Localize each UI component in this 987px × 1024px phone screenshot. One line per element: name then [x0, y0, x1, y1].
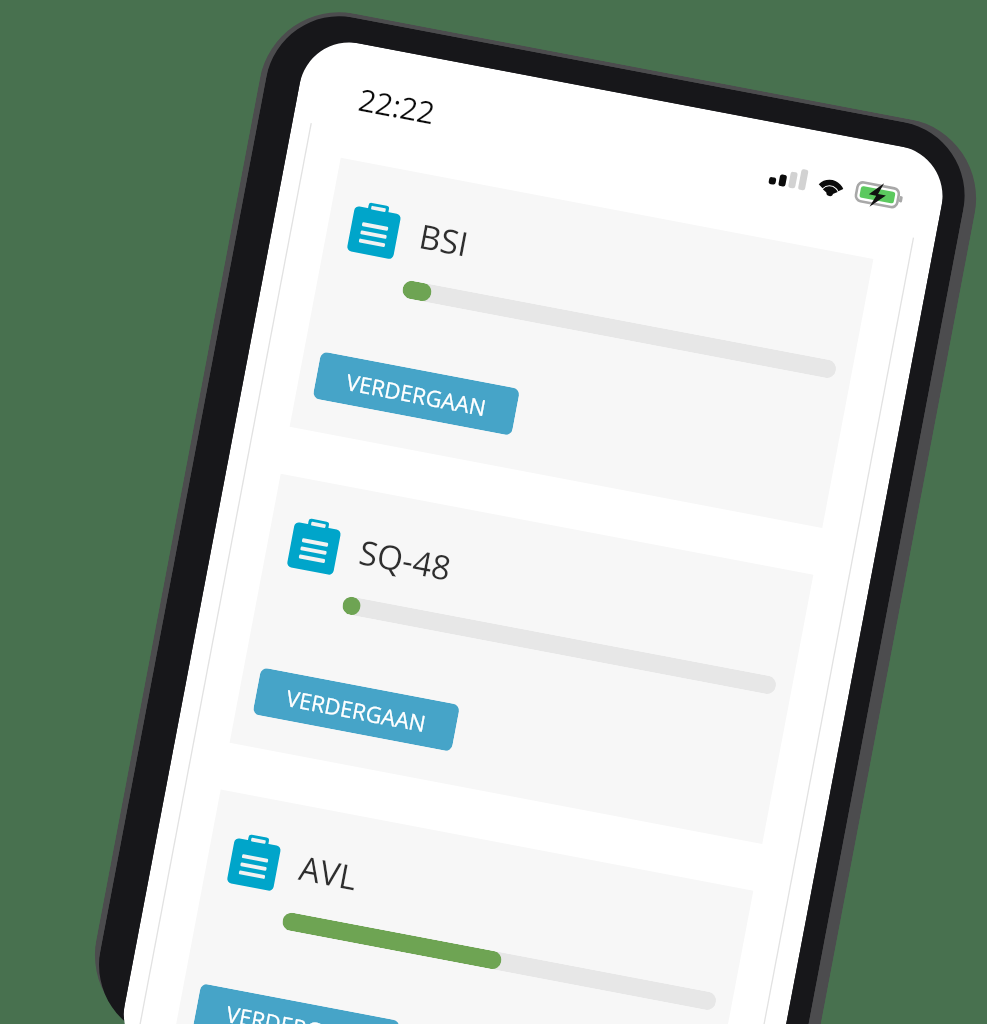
staticText: AVL	[296, 845, 361, 900]
button[interactable]: Questionnaire	[230, 474, 813, 844]
other: Questionnaire	[286, 516, 342, 575]
staticText: 22:22	[355, 78, 439, 134]
staticText: VERDERGAAN	[343, 366, 489, 422]
button[interactable]: VERDERGAAN	[252, 667, 460, 752]
staticText: BSI	[416, 213, 472, 267]
other: Questionnaire	[346, 200, 402, 259]
button[interactable]: Questionnaire	[290, 158, 873, 528]
staticText: SQ-48	[356, 529, 456, 591]
staticText: VERDERGAAN	[223, 998, 369, 1024]
button[interactable]: Questionnaire	[170, 790, 753, 1024]
staticText: VERDERGAAN	[283, 682, 429, 738]
other: Questionnaire	[226, 832, 282, 891]
button[interactable]: VERDERGAAN	[312, 351, 520, 436]
button[interactable]: VERDERGAAN	[192, 983, 400, 1024]
